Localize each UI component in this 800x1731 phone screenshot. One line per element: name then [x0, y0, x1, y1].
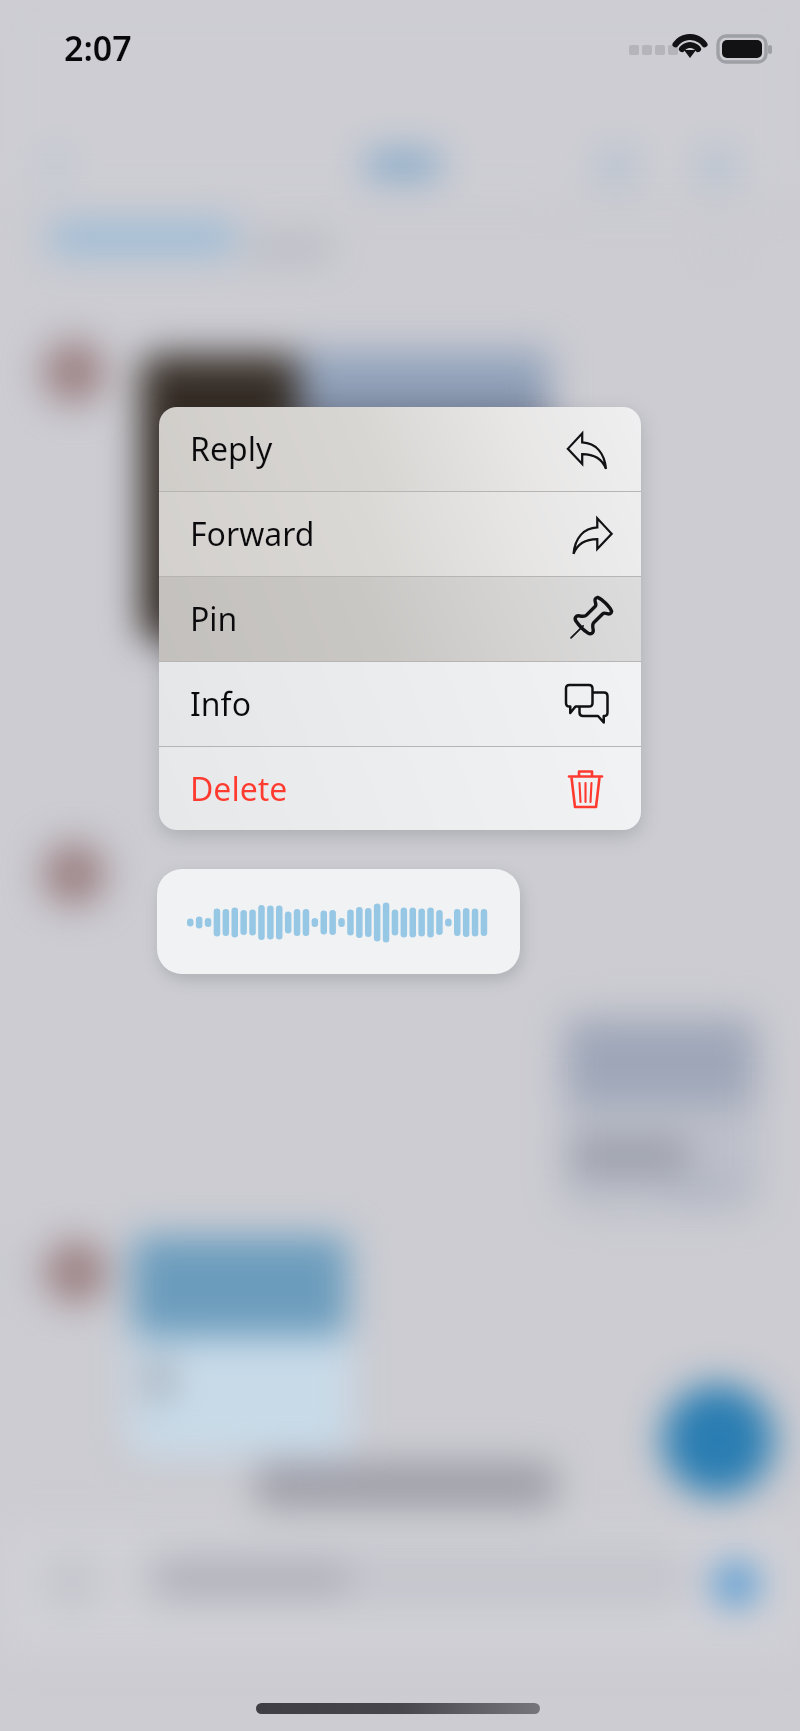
staticText: Delete [190, 767, 288, 811]
button[interactable]: Reply [159, 407, 641, 491]
button[interactable]: Forward [159, 492, 641, 576]
button[interactable]: Play voice message [157, 869, 520, 974]
button[interactable]: Info [159, 662, 641, 746]
staticText: Pin [190, 597, 238, 641]
staticText: Info [190, 682, 251, 726]
button[interactable]: Pin [159, 577, 641, 661]
button[interactable]: Delete [159, 747, 641, 830]
staticText: Reply [190, 427, 273, 471]
staticText: Forward [190, 512, 315, 556]
staticText: 2:07 [64, 25, 132, 71]
